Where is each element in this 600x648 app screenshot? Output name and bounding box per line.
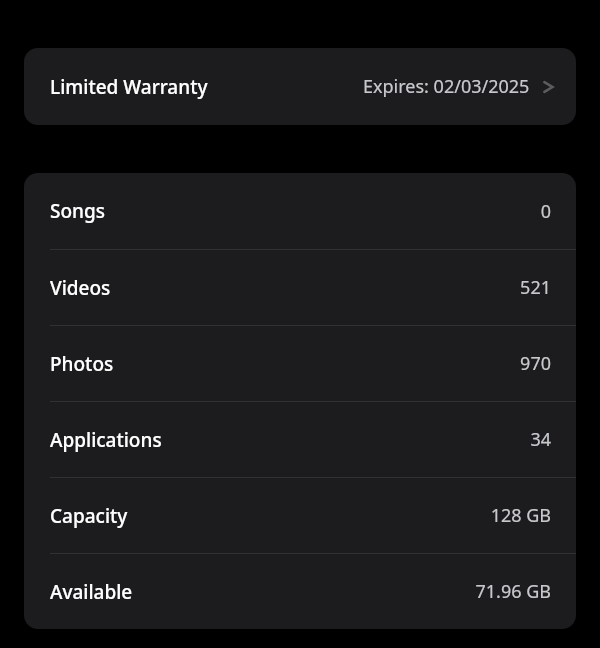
staticText: Songs	[50, 198, 105, 224]
button[interactable]: Limited Warranty	[24, 48, 576, 125]
staticText: Applications	[50, 427, 162, 453]
button[interactable]: Applications	[24, 402, 576, 477]
staticText: 521	[520, 275, 551, 300]
button[interactable]: Available	[24, 554, 576, 629]
staticText: 970	[520, 351, 551, 376]
staticText: Capacity	[50, 503, 128, 529]
staticText: Photos	[50, 351, 114, 377]
button[interactable]: Capacity	[24, 478, 576, 553]
staticText: 34	[530, 427, 551, 452]
staticText: Available	[50, 579, 133, 605]
staticText: Limited Warranty	[50, 74, 208, 100]
staticText: Expires: 02/03/2025	[363, 74, 530, 99]
staticText: Videos	[50, 275, 111, 301]
staticText: 0	[540, 199, 551, 224]
button[interactable]: Songs	[24, 173, 576, 249]
staticText: 128 GB	[490, 503, 551, 528]
button[interactable]: Videos	[24, 250, 576, 325]
button[interactable]: Photos	[24, 326, 576, 401]
other: Warranty details	[540, 77, 560, 97]
staticText: 71.96 GB	[475, 579, 551, 604]
